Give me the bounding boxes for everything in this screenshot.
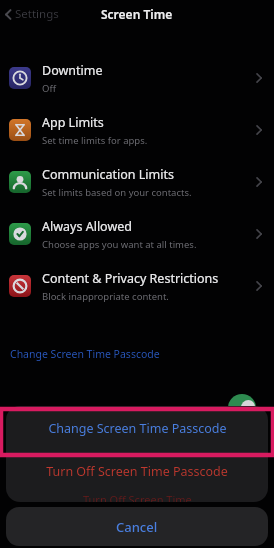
staticText: App Limits (42, 114, 104, 131)
staticText: Turn Off Screen Time Passcode (46, 463, 228, 480)
button[interactable]: Communication Limits (0, 156, 274, 208)
staticText: Block inappropriate content. (42, 290, 169, 303)
staticText: Off (42, 82, 56, 95)
button[interactable]: Turn Off Screen Time (6, 492, 268, 502)
button[interactable]: Content & Privacy Restrictions (0, 260, 274, 312)
button[interactable]: Cancel (6, 507, 268, 546)
button[interactable]: Downtime (0, 52, 274, 104)
staticText: Downtime (42, 62, 103, 79)
staticText: Set limits based on your contacts. (42, 186, 192, 199)
staticText: Screen Time (101, 6, 173, 22)
staticText: Communication Limits (42, 166, 174, 183)
button[interactable]: Change Screen Time Passcode (6, 406, 268, 450)
button[interactable]: Settings (0, 4, 65, 24)
staticText: Content & Privacy Restrictions (42, 270, 219, 287)
staticText: Set time limits for apps. (42, 134, 148, 147)
button[interactable]: Turn Off Screen Time Passcode (6, 450, 268, 492)
staticText: Choose apps you want at all times. (42, 238, 197, 251)
staticText: Cancel (116, 518, 158, 536)
button[interactable]: App Limits (0, 104, 274, 156)
staticText: Settings (15, 6, 59, 22)
other: Highlighted action (1, 409, 273, 455)
staticText: Always Allowed (42, 218, 132, 235)
staticText: Turn Off Screen Time (83, 492, 192, 502)
staticText: Change Screen Time Passcode (48, 420, 227, 437)
button[interactable]: Change Screen Time Passcode (0, 345, 168, 363)
button[interactable]: Always Allowed (0, 208, 274, 260)
